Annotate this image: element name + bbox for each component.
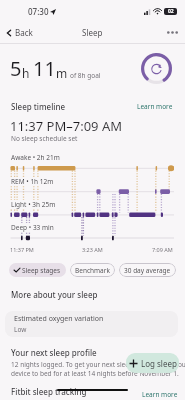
- button[interactable]: More options: [160, 25, 185, 40]
- staticText: Your next sleep profile: [11, 347, 97, 358]
- staticText: Log sleep: [141, 358, 177, 369]
- button[interactable]: Log sleep: [126, 353, 179, 373]
- staticText: 7:09 AM: [152, 246, 173, 253]
- staticText: h: [22, 65, 30, 81]
- staticText: 12 nights logged. To get your next sleep…: [11, 360, 185, 378]
- button[interactable]: 30 day average: [119, 263, 176, 277]
- staticText: 11:37 PM: [10, 246, 34, 253]
- staticText: 11:37 PM–7:09 AM: [10, 117, 123, 135]
- staticText: Fitbit sleep tracking: [11, 386, 87, 397]
- button[interactable]: Estimated oxygen variation: [5, 311, 178, 337]
- button[interactable]: Back: [0, 27, 39, 38]
- staticText: Estimated oxygen variation: [14, 314, 104, 324]
- staticText: 02: [168, 8, 174, 15]
- staticText: More about your sleep: [11, 289, 98, 300]
- staticText: Sleep: [82, 27, 103, 38]
- staticText: 30 day average: [124, 266, 171, 275]
- staticText: Back: [15, 27, 33, 38]
- button[interactable]: Learn more: [134, 99, 176, 114]
- staticText: No sleep schedule set: [11, 134, 78, 143]
- staticText: m: [56, 65, 68, 81]
- button[interactable]: Sleep stages: [9, 263, 66, 277]
- staticText: Awake • 2h 21m: [11, 153, 60, 162]
- staticText: Deep • 33 min: [11, 223, 54, 232]
- staticText: 07:30: [28, 6, 49, 17]
- staticText: Sleep timeline: [11, 101, 66, 112]
- staticText: Learn more: [142, 390, 178, 399]
- button[interactable]: Learn more: [140, 388, 180, 400]
- staticText: of 8h goal: [70, 71, 101, 80]
- staticText: 11: [33, 55, 56, 82]
- staticText: REM • 1h 12m: [11, 177, 54, 186]
- staticText: 3:23 AM: [82, 246, 103, 253]
- staticText: Learn more: [137, 102, 173, 111]
- button[interactable]: Benchmark: [70, 263, 115, 277]
- staticText: Light • 3h 25m: [11, 200, 56, 209]
- staticText: Benchmark: [75, 266, 110, 275]
- staticText: 5: [10, 55, 22, 82]
- staticText: Low: [14, 325, 27, 334]
- staticText: Sleep stages: [22, 266, 61, 275]
